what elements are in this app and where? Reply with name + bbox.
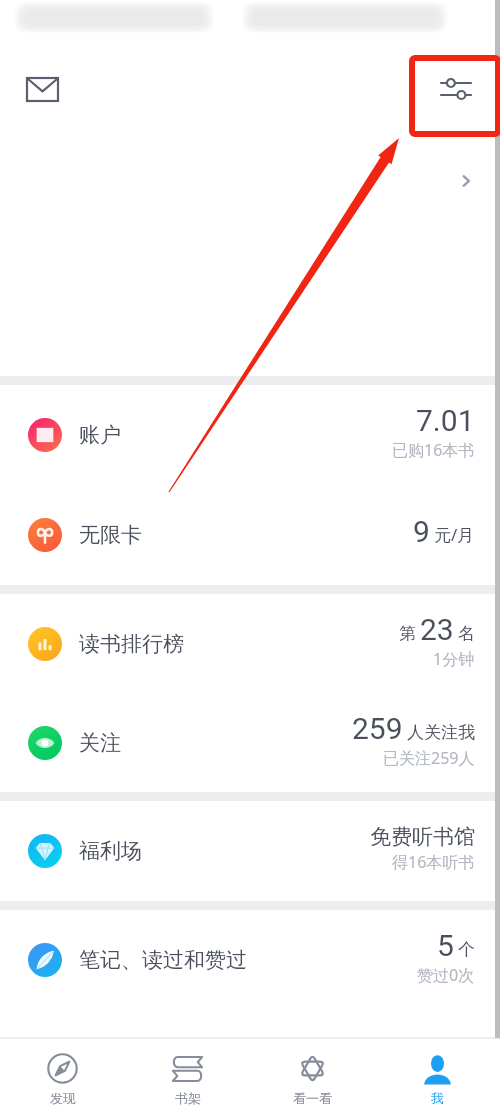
staticText: 读书排行榜 xyxy=(79,631,184,657)
staticText: 发现 xyxy=(50,1090,76,1106)
staticText: 9 xyxy=(413,514,430,549)
button[interactable]: 书架 xyxy=(125,1039,250,1116)
staticText: 名 xyxy=(458,623,475,644)
staticText: 笔记、读过和赞过 xyxy=(79,947,247,973)
staticText: 7.01 xyxy=(416,403,475,438)
button[interactable]: Settings xyxy=(432,65,480,113)
button[interactable]: 关注 xyxy=(0,693,500,792)
button[interactable]: 发现 xyxy=(0,1039,125,1116)
staticText: 我 xyxy=(431,1090,444,1106)
staticText: 259 xyxy=(352,711,403,746)
staticText: 无限卡 xyxy=(79,522,142,548)
staticText: 书架 xyxy=(175,1090,201,1106)
button[interactable]: 看一看 xyxy=(250,1039,375,1116)
staticText: 元/月 xyxy=(434,523,475,546)
staticText: 个 xyxy=(458,939,475,960)
staticText: 人关注我 xyxy=(407,722,475,743)
button[interactable]: 我 xyxy=(375,1039,500,1116)
staticText: 5 xyxy=(437,928,454,963)
button[interactable]: 福利场 xyxy=(0,801,500,901)
staticText: 账户 xyxy=(79,422,121,448)
button[interactable]: Profile xyxy=(449,164,483,198)
staticText: 第 xyxy=(399,623,416,644)
staticText: 得16本听书 xyxy=(392,851,475,873)
staticText: 已购16本书 xyxy=(392,439,475,461)
button[interactable]: 读书排行榜 xyxy=(0,594,500,693)
button[interactable]: Messages xyxy=(18,65,66,113)
staticText: 1分钟 xyxy=(433,648,475,670)
button[interactable]: 笔记、读过和赞过 xyxy=(0,910,500,1010)
staticText: 免费听书馆 xyxy=(370,824,475,850)
staticText: 福利场 xyxy=(79,838,142,864)
staticText: 赞过0次 xyxy=(417,964,475,986)
staticText: 已关注259人 xyxy=(383,747,475,769)
staticText: 关注 xyxy=(79,730,121,756)
button[interactable]: 无限卡 xyxy=(0,485,500,585)
staticText: 23 xyxy=(420,612,454,647)
staticText: 看一看 xyxy=(293,1090,332,1106)
button[interactable]: 账户 xyxy=(0,385,500,485)
